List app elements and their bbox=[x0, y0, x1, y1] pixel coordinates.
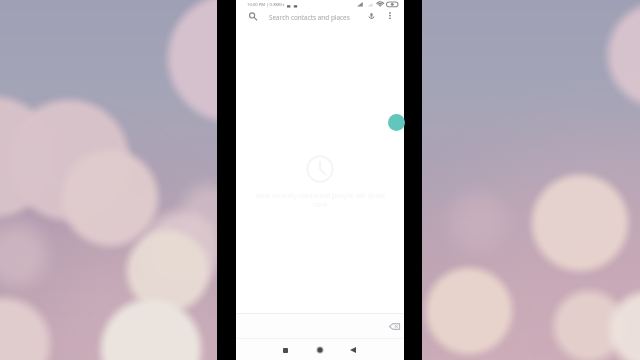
button[interactable]: Recents bbox=[277, 342, 293, 358]
button[interactable]: Dialpad bbox=[388, 114, 405, 131]
button[interactable]: Search contacts and places bbox=[238, 9, 402, 25]
button[interactable]: Back bbox=[345, 342, 361, 358]
button[interactable]: Backspace bbox=[387, 319, 401, 333]
other: More options bbox=[384, 11, 397, 24]
button[interactable]: Home bbox=[312, 342, 328, 358]
staticText: Search contacts and places bbox=[269, 13, 350, 22]
staticText: 10:00 PM | 0.8KB/s bbox=[247, 2, 285, 8]
other: Voice search bbox=[365, 11, 378, 24]
